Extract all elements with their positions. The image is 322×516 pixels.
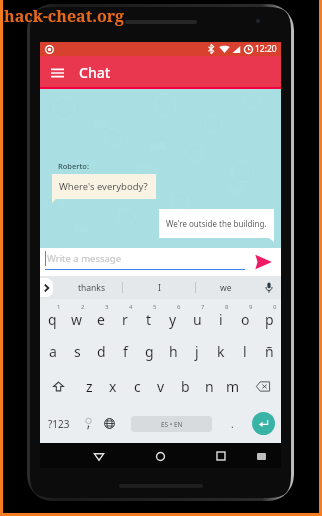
button[interactable]: x	[101, 369, 125, 404]
button[interactable]: 2	[65, 299, 89, 334]
button[interactable]: 9	[233, 299, 257, 334]
staticText: v	[157, 377, 165, 396]
button[interactable]: ñ	[257, 334, 281, 369]
staticText: z	[86, 377, 93, 396]
staticText: 9	[249, 303, 253, 311]
button[interactable]: ES • EN	[131, 416, 212, 432]
staticText: w	[71, 310, 83, 329]
button[interactable]: Emoji	[78, 404, 98, 443]
button[interactable]: 8	[209, 299, 233, 334]
staticText: t	[146, 310, 152, 329]
button[interactable]: 7	[185, 299, 209, 334]
button[interactable]: j	[185, 334, 209, 369]
staticText: r	[122, 310, 128, 329]
staticText: i	[219, 310, 223, 329]
staticText: 6	[177, 303, 181, 311]
button[interactable]: Switch keyboard	[253, 448, 269, 464]
staticText: We're outside the building.	[166, 218, 267, 229]
button[interactable]: Backspace	[245, 369, 281, 404]
button[interactable]: Shift	[40, 369, 77, 404]
button[interactable]: a	[40, 334, 65, 369]
staticText: 2	[81, 303, 85, 311]
button[interactable]: 6	[161, 299, 185, 334]
button[interactable]: g	[137, 334, 161, 369]
button[interactable]: Recent apps	[210, 445, 232, 467]
button[interactable]: More suggestions	[40, 278, 53, 297]
staticText: q	[48, 310, 57, 329]
button[interactable]: Change language	[99, 404, 119, 443]
staticText: ES • EN	[161, 420, 183, 429]
button[interactable]: s	[65, 334, 89, 369]
button[interactable]: c	[125, 369, 149, 404]
button[interactable]: 1	[40, 299, 65, 334]
staticText: Chat	[79, 63, 111, 82]
staticText: g	[145, 342, 154, 361]
staticText: Roberto:	[58, 161, 89, 171]
button[interactable]: .	[222, 404, 242, 443]
staticText: ñ	[265, 342, 274, 361]
staticText: u	[193, 310, 202, 329]
staticText: n	[205, 377, 214, 396]
button[interactable]: d	[89, 334, 113, 369]
button[interactable]: 4	[113, 299, 137, 334]
button[interactable]: Open navigation menu	[46, 62, 68, 84]
button[interactable]: l	[233, 334, 257, 369]
staticText: p	[265, 310, 274, 329]
button[interactable]: Send message	[251, 252, 275, 272]
button[interactable]: n	[197, 369, 221, 404]
staticText: l	[243, 342, 247, 361]
staticText: 0	[273, 303, 277, 311]
staticText: c	[134, 377, 141, 396]
button[interactable]: k	[209, 334, 233, 369]
button[interactable]: thanks	[60, 276, 122, 299]
button[interactable]: v	[149, 369, 173, 404]
staticText: k	[217, 342, 225, 361]
staticText: 5	[153, 303, 157, 311]
staticText: d	[97, 342, 106, 361]
staticText: 4	[129, 303, 133, 311]
button[interactable]: ?123	[42, 404, 76, 443]
staticText: Where's everybody?	[59, 180, 148, 193]
button[interactable]: b	[173, 369, 197, 404]
staticText: I	[158, 282, 161, 294]
button[interactable]: h	[161, 334, 185, 369]
staticText: 7	[201, 303, 205, 311]
button[interactable]: 5	[137, 299, 161, 334]
staticText: y	[169, 310, 177, 329]
staticText: 1	[57, 303, 61, 311]
button[interactable]: f	[113, 334, 137, 369]
button[interactable]: Enter	[252, 412, 275, 435]
staticText: Write a message	[47, 252, 122, 265]
button[interactable]: Voice input	[256, 276, 281, 299]
staticText: 8	[225, 303, 229, 311]
button[interactable]: Home	[149, 445, 171, 467]
staticText: o	[241, 310, 250, 329]
staticText: b	[181, 377, 190, 396]
button[interactable]: we	[196, 276, 256, 299]
staticText: s	[74, 342, 81, 361]
staticText: hack-cheat.org	[4, 5, 125, 27]
staticText: m	[226, 377, 240, 396]
staticText: .	[231, 417, 234, 431]
staticText: e	[97, 310, 105, 329]
button[interactable]: 3	[89, 299, 113, 334]
button[interactable]: m	[221, 369, 245, 404]
staticText: f	[123, 342, 128, 361]
button[interactable]: z	[77, 369, 101, 404]
staticText: 3	[105, 303, 109, 311]
staticText: ?123	[48, 417, 70, 431]
button[interactable]: Back	[88, 445, 110, 467]
staticText: h	[169, 342, 178, 361]
button[interactable]: 0	[257, 299, 281, 334]
staticText: we	[220, 282, 232, 294]
button[interactable]: I	[123, 276, 195, 299]
staticText: thanks	[78, 282, 105, 294]
staticText: x	[109, 377, 117, 396]
staticText: a	[49, 342, 57, 361]
staticText: 12:20	[255, 43, 277, 55]
staticText: j	[195, 342, 199, 361]
